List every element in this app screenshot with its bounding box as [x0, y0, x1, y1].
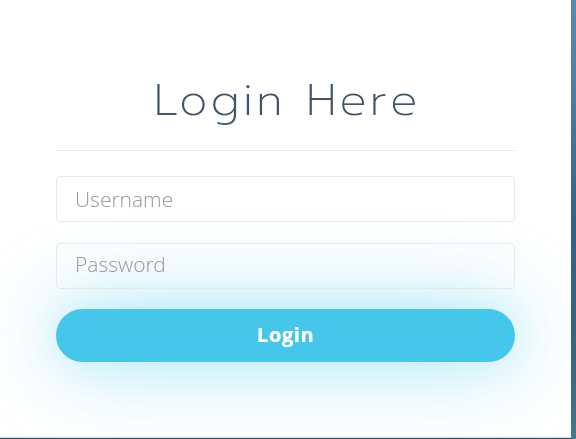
staticText: Login Here [154, 67, 421, 134]
button[interactable]: Password [56, 243, 515, 289]
button[interactable]: Login [56, 309, 515, 362]
staticText: Login [257, 321, 315, 348]
staticText: Password [75, 250, 166, 279]
button[interactable]: Username [56, 176, 515, 222]
staticText: Username [75, 185, 174, 214]
